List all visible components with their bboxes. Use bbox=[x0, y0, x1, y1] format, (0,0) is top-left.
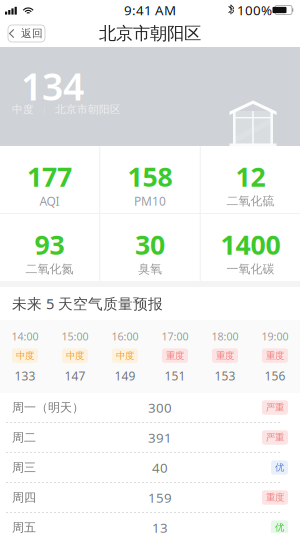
staticText: 100% bbox=[237, 1, 272, 19]
staticText: 300 bbox=[148, 399, 172, 416]
staticText: 周一（明天） bbox=[12, 400, 84, 415]
staticText: 周五 bbox=[12, 520, 36, 533]
staticText: 149 bbox=[114, 368, 135, 384]
staticText: 153 bbox=[214, 368, 235, 384]
staticText: 一氧化碳 bbox=[226, 262, 274, 276]
button[interactable]: 周四 bbox=[0, 483, 300, 512]
staticText: 北京市朝阳区 bbox=[99, 23, 201, 44]
staticText: 9:41 AM bbox=[124, 1, 176, 19]
staticText: 17:00 bbox=[161, 329, 188, 343]
button[interactable]: 周三 bbox=[0, 453, 300, 482]
staticText: 16:00 bbox=[111, 329, 138, 343]
staticText: 15:00 bbox=[61, 329, 88, 343]
staticText: 严重 bbox=[266, 432, 284, 443]
staticText: 30 bbox=[135, 227, 165, 262]
staticText: 优 bbox=[275, 522, 284, 533]
staticText: 93 bbox=[34, 227, 64, 262]
staticText: 周三 bbox=[12, 460, 36, 475]
staticText: 中度 bbox=[116, 350, 134, 361]
staticText: 重度 bbox=[216, 350, 234, 361]
staticText: 12 bbox=[235, 159, 265, 194]
staticText: 中度 bbox=[16, 350, 34, 361]
staticText: 147 bbox=[64, 368, 85, 384]
staticText: 391 bbox=[148, 429, 172, 446]
staticText: 二氧化氮 bbox=[25, 262, 73, 276]
staticText: 中度 bbox=[66, 350, 84, 361]
staticText: 1400 bbox=[220, 227, 280, 262]
button[interactable]: 返回 bbox=[8, 25, 45, 42]
staticText: 158 bbox=[127, 159, 172, 194]
staticText: 重度 bbox=[266, 350, 284, 361]
staticText: 重度 bbox=[266, 492, 284, 503]
staticText: 周四 bbox=[12, 490, 36, 505]
staticText: 177 bbox=[27, 159, 72, 194]
staticText: 151 bbox=[164, 368, 185, 384]
staticText: 19:00 bbox=[261, 329, 288, 343]
staticText: 133 bbox=[14, 368, 35, 384]
staticText: 周二 bbox=[12, 430, 36, 445]
button[interactable]: 周二 bbox=[0, 423, 300, 452]
staticText: 未来 5 天空气质量预报 bbox=[12, 294, 163, 313]
staticText: PM10 bbox=[134, 193, 166, 209]
staticText: 重度 bbox=[166, 350, 184, 361]
button[interactable]: 周五 bbox=[0, 513, 300, 533]
staticText: 二氧化硫 bbox=[226, 194, 274, 208]
staticText: 返回 bbox=[21, 27, 43, 40]
staticText: 北京市朝阳区 bbox=[55, 103, 121, 116]
staticText: 中度 bbox=[12, 103, 34, 116]
staticText: 14:00 bbox=[11, 329, 38, 343]
staticText: 臭氧 bbox=[138, 262, 162, 276]
staticText: 134 bbox=[21, 61, 84, 111]
staticText: 159 bbox=[148, 489, 172, 506]
staticText: 18:00 bbox=[211, 329, 238, 343]
staticText: 优 bbox=[275, 462, 284, 473]
button[interactable]: 周一（明天） bbox=[0, 393, 300, 422]
staticText: 严重 bbox=[266, 402, 284, 413]
staticText: 13 bbox=[152, 519, 168, 533]
staticText: 40 bbox=[152, 459, 168, 476]
staticText: AQI bbox=[39, 193, 59, 209]
staticText: 156 bbox=[264, 368, 285, 384]
